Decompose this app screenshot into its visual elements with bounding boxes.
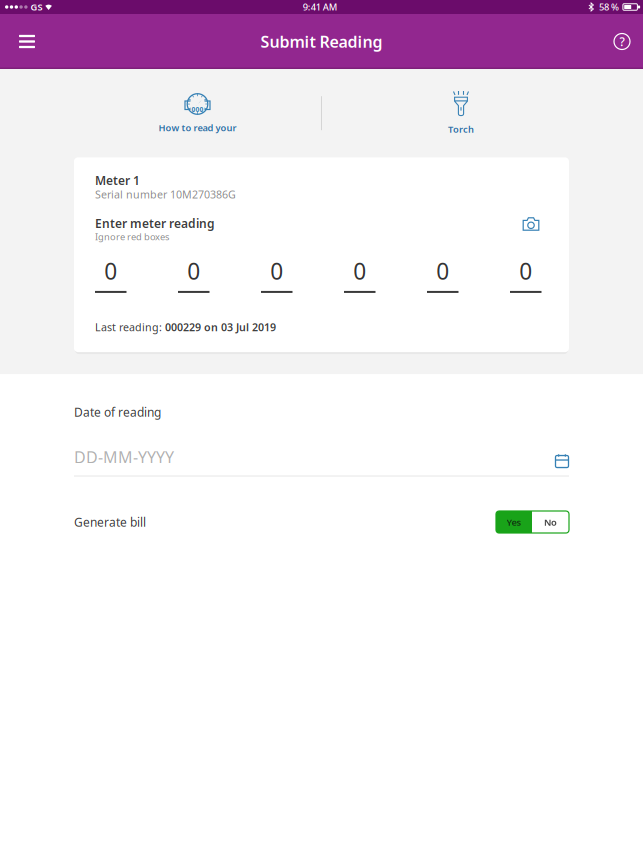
staticText: ? <box>619 33 624 49</box>
staticText: GS <box>31 1 43 13</box>
staticText: 0 <box>270 256 283 286</box>
staticText: Ignore red boxes <box>95 230 169 243</box>
button[interactable]: Help <box>599 18 643 64</box>
button[interactable]: Yes <box>496 511 532 533</box>
button[interactable]: 000 <box>74 92 321 134</box>
staticText: No <box>544 516 557 528</box>
staticText: Last reading: <box>95 320 165 334</box>
staticText: Meter 1 <box>95 172 140 188</box>
button[interactable]: No <box>532 511 569 533</box>
staticText: 000 <box>191 105 203 114</box>
button[interactable]: Torch <box>322 91 600 135</box>
staticText: 000229 on 03 Jul 2019 <box>165 320 276 334</box>
staticText: 0 <box>519 256 532 286</box>
staticText: Submit Reading <box>260 31 382 52</box>
staticText: 0 <box>436 256 449 286</box>
staticText: DD-MM-YYYY <box>74 446 174 468</box>
staticText: 0 <box>187 256 200 286</box>
staticText: Yes <box>506 516 521 528</box>
staticText: 9:41 AM <box>303 1 338 13</box>
staticText: How to read your <box>158 121 236 134</box>
button[interactable]: Choose date <box>555 454 569 468</box>
button[interactable]: Take a photo of the meter <box>522 217 539 231</box>
button[interactable]: Menu <box>4 18 50 64</box>
staticText: 58 % <box>599 1 619 13</box>
staticText: Torch <box>448 123 474 135</box>
staticText: Enter meter reading <box>95 215 215 231</box>
staticText: 0 <box>353 256 366 286</box>
staticText: Date of reading <box>74 404 161 420</box>
staticText: Generate bill <box>74 514 146 530</box>
staticText: 0 <box>104 256 117 286</box>
staticText: Serial number 10M270386G <box>95 187 236 201</box>
